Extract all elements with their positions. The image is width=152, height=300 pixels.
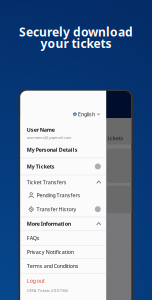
staticText: English <box>78 111 95 118</box>
button[interactable]: Log out <box>20 274 106 288</box>
staticText: Securely download <box>19 24 133 40</box>
staticText: your tickets <box>40 35 111 51</box>
button[interactable]: Terms and Conditions <box>20 259 106 273</box>
staticText: Ticket Transfers <box>27 179 67 186</box>
staticText: username@yopmail.com <box>27 135 72 140</box>
button[interactable]: More Information <box>20 217 106 230</box>
button[interactable]: English <box>20 111 106 118</box>
button[interactable]: Pending Transfers <box>20 189 106 202</box>
staticText: Pending Transfers <box>36 192 80 199</box>
button[interactable]: My Tickets <box>20 158 106 175</box>
staticText: ickets <box>107 135 123 142</box>
staticText: FAQs <box>27 234 40 242</box>
button[interactable]: Transfer History <box>20 202 106 217</box>
staticText: My Tickets <box>27 163 55 170</box>
staticText: Privacy Notification <box>27 248 74 256</box>
button[interactable]: My Personal Details <box>20 142 106 158</box>
staticText: My Personal Details <box>27 146 78 153</box>
staticText: Log out <box>27 277 45 284</box>
staticText: Transfer History <box>36 206 76 213</box>
staticText: User Name <box>27 126 55 133</box>
button[interactable]: Privacy Notification <box>20 246 106 258</box>
button[interactable]: Ticket Transfers <box>20 175 106 189</box>
button[interactable]: FAQs <box>20 231 106 245</box>
staticText: Terms and Conditions <box>27 262 79 270</box>
staticText: More Information <box>27 220 71 227</box>
staticText: UEFA Tickets 2.0.0 (166) <box>27 288 68 293</box>
